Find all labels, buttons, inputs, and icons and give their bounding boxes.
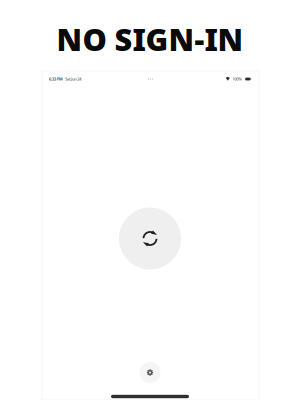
- staticText: NO SIGN-IN: [56, 19, 243, 59]
- staticText: 100%: [233, 76, 242, 82]
- staticText: Sat Jun 24: [65, 76, 81, 82]
- button[interactable]: Settings: [139, 362, 160, 383]
- button[interactable]: Refresh: [119, 207, 181, 269]
- staticText: 6:33 PM: [49, 76, 63, 82]
